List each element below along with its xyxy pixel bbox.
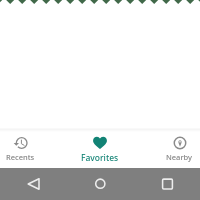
button[interactable]: Favorites: [41, 128, 159, 168]
button[interactable]: Recents: [0, 128, 41, 168]
button[interactable]: Recent apps: [134, 168, 200, 200]
staticText: Recents: [6, 152, 35, 162]
button[interactable]: Back: [0, 168, 66, 200]
button[interactable]: Nearby: [159, 128, 200, 168]
staticText: Favorites: [81, 152, 119, 164]
staticText: Nearby: [166, 152, 193, 162]
button[interactable]: Home: [67, 168, 133, 200]
